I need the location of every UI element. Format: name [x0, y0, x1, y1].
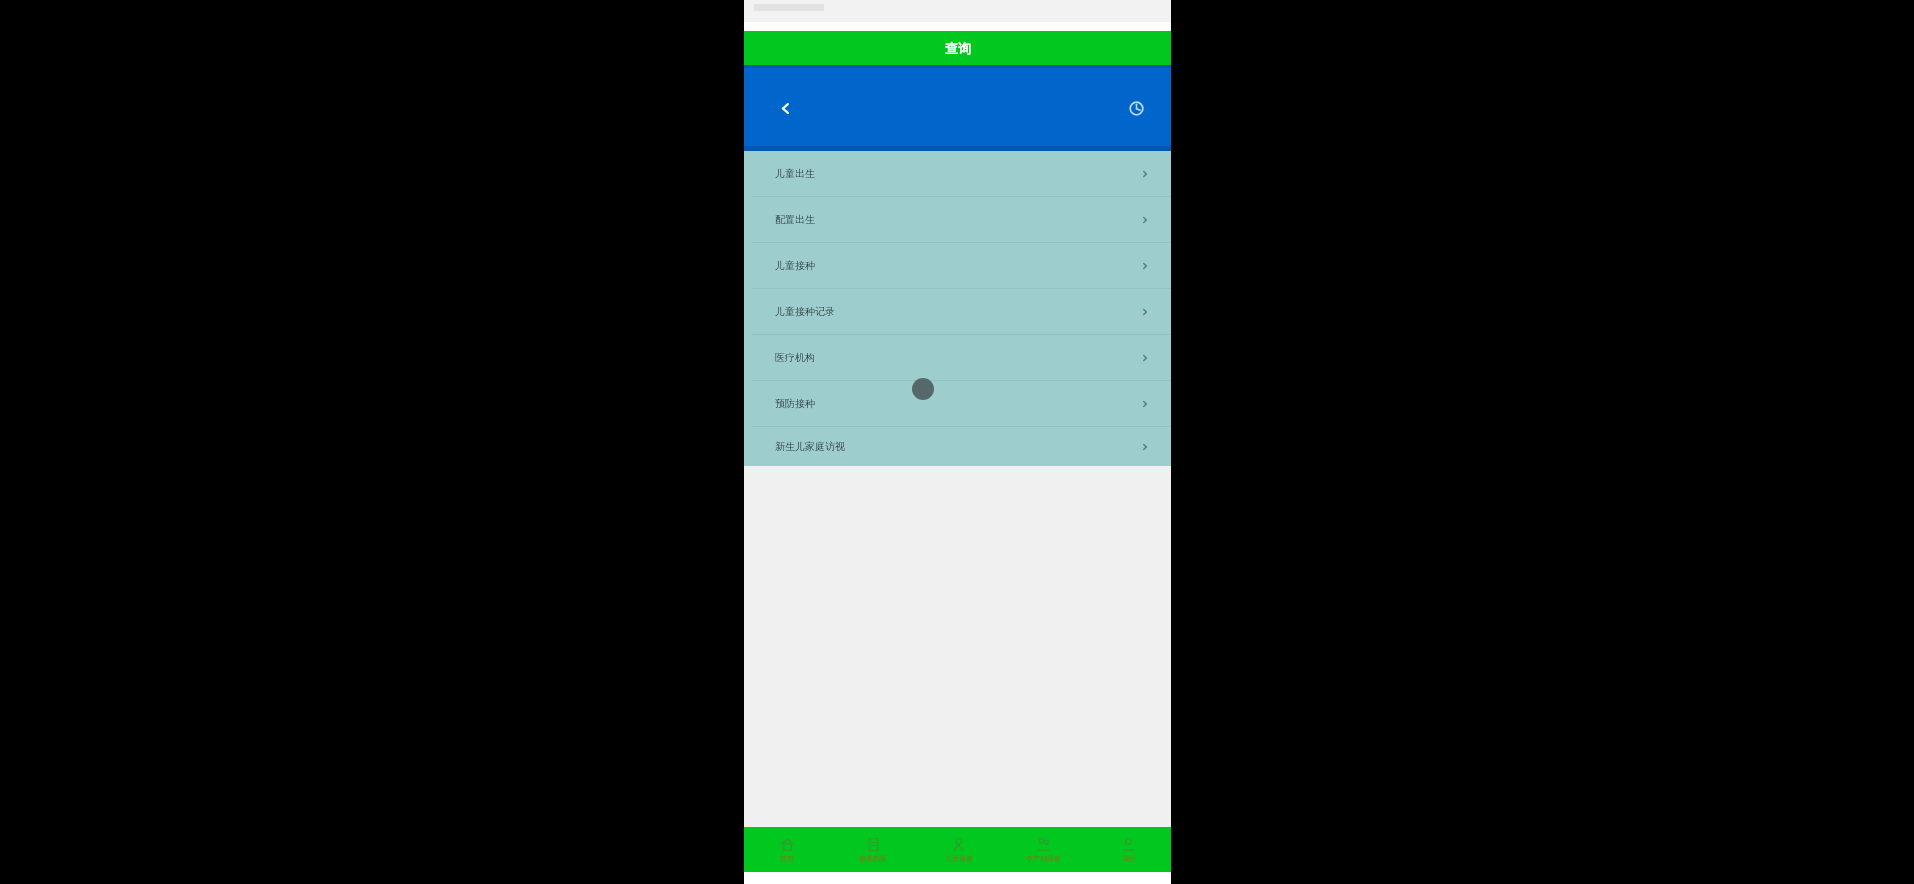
staticText: 我的	[1122, 854, 1136, 863]
button[interactable]: Back	[770, 93, 800, 123]
staticText: 新生儿家庭访视	[775, 440, 845, 453]
button[interactable]: 儿童接种记录	[744, 289, 1171, 334]
button[interactable]: 孕产妇保健	[1001, 827, 1086, 872]
staticText: 预防接种	[775, 397, 815, 410]
button[interactable]: 儿童接种	[744, 243, 1171, 288]
staticText: 查询	[945, 40, 971, 56]
staticText: 儿童接种	[775, 259, 815, 272]
staticText: 健康档案	[859, 854, 887, 863]
button[interactable]: 预防接种	[744, 381, 1171, 426]
button[interactable]: 新生儿家庭访视	[744, 427, 1171, 466]
button[interactable]: 健康档案	[830, 827, 916, 872]
staticText: 医疗机构	[775, 351, 815, 364]
button[interactable]: 儿童出生	[744, 151, 1171, 196]
button[interactable]: 查询	[744, 31, 1171, 65]
staticText: 儿童保健	[945, 854, 973, 863]
staticText: 孕产妇保健	[1026, 854, 1061, 863]
staticText: 首页	[780, 854, 794, 863]
button[interactable]: 我的	[1086, 827, 1171, 872]
staticText: 儿童接种记录	[775, 305, 835, 318]
button[interactable]: 配置出生	[744, 197, 1171, 242]
button[interactable]: 医疗机构	[744, 335, 1171, 380]
staticText: 配置出生	[775, 213, 815, 226]
staticText: 儿童出生	[775, 167, 815, 180]
button[interactable]: 儿童保健	[916, 827, 1001, 872]
button[interactable]: 首页	[744, 827, 830, 872]
button[interactable]: Refresh	[1121, 93, 1151, 123]
